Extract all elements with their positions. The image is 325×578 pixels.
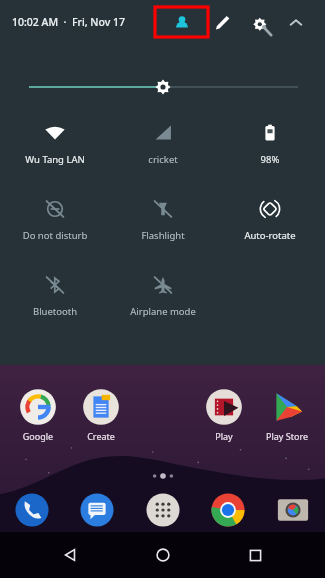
staticText: 98% (218, 153, 322, 166)
button[interactable]: Auto-rotate (218, 194, 322, 244)
button[interactable]: cricket (111, 118, 215, 168)
button[interactable]: Wu Tang LAN (3, 118, 107, 168)
button[interactable]: User account (155, 7, 208, 37)
staticText: 10:02 AM · Fri, Nov 17 (12, 15, 125, 29)
button[interactable]: Play (194, 388, 254, 442)
button[interactable]: Recent apps (233, 533, 277, 577)
button[interactable]: Chrome (206, 488, 250, 532)
button[interactable]: Home (141, 533, 185, 577)
button[interactable]: Settings (248, 12, 276, 40)
button[interactable]: Bluetooth (3, 270, 107, 320)
button[interactable]: Google (8, 388, 68, 442)
staticText: cricket (111, 153, 215, 166)
staticText: Airplane mode (111, 305, 215, 318)
button[interactable]: Back (48, 533, 92, 577)
staticText: Bluetooth (3, 305, 107, 318)
button[interactable]: Messages (75, 488, 119, 532)
button[interactable]: Flashlight (111, 194, 215, 244)
button[interactable]: Collapse (285, 12, 307, 34)
button[interactable]: Phone (10, 488, 54, 532)
button[interactable]: Do not disturb (3, 194, 107, 244)
staticText: Flashlight (111, 229, 215, 242)
button[interactable]: 98% (218, 118, 322, 168)
staticText: Google (8, 430, 68, 442)
staticText: Play (194, 430, 254, 442)
staticText: Auto-rotate (218, 229, 322, 242)
button[interactable]: Apps (141, 488, 185, 532)
staticText: Create (71, 430, 131, 442)
staticText: Do not disturb (3, 229, 107, 242)
staticText: Wu Tang LAN (3, 153, 107, 166)
button[interactable]: Airplane mode (111, 270, 215, 320)
staticText: Play Store (257, 430, 317, 442)
button[interactable]: Brightness (0, 70, 325, 104)
button[interactable]: Camera (271, 488, 315, 532)
button[interactable]: Edit (212, 12, 232, 32)
button[interactable]: Play Store (257, 388, 317, 442)
button[interactable]: Create (71, 388, 131, 442)
